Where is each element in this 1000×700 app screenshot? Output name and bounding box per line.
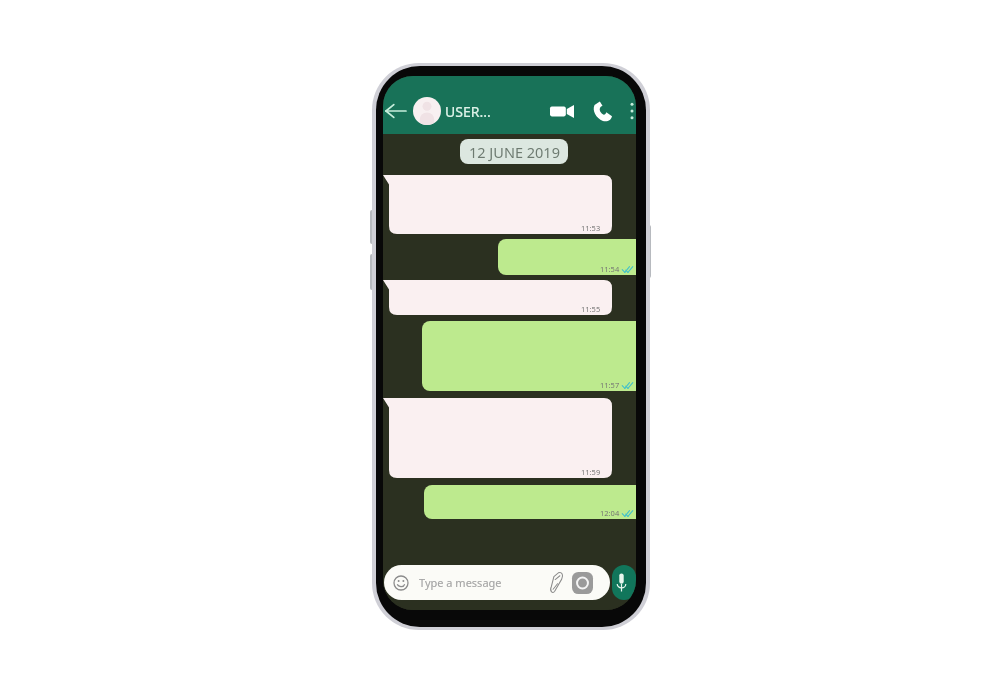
staticText: 12 JUNE 2019 <box>469 142 560 162</box>
button[interactable]: Video call <box>548 98 576 124</box>
button[interactable]: 11:57 <box>422 321 636 391</box>
button[interactable]: Type a message <box>384 565 610 600</box>
staticText: 12:04 <box>600 508 620 518</box>
staticText: USER... <box>445 102 491 121</box>
staticText: 11:54 <box>600 264 620 274</box>
staticText: 11:55 <box>581 304 601 314</box>
staticText: Type a message <box>419 575 502 590</box>
button[interactable]: 11:54 <box>498 239 636 275</box>
button[interactable]: 12:04 <box>424 485 636 519</box>
button[interactable]: Back <box>384 97 408 125</box>
button[interactable]: 11:59 <box>383 398 612 478</box>
button[interactable]: More options <box>627 99 636 123</box>
staticText: 11:59 <box>581 467 601 477</box>
staticText: 11:57 <box>600 380 620 390</box>
button[interactable]: 11:53 <box>383 175 612 234</box>
button[interactable]: 11:55 <box>383 280 612 315</box>
button[interactable]: Voice message <box>612 565 636 600</box>
button[interactable]: Voice call <box>590 99 614 123</box>
staticText: 11:53 <box>581 223 601 233</box>
